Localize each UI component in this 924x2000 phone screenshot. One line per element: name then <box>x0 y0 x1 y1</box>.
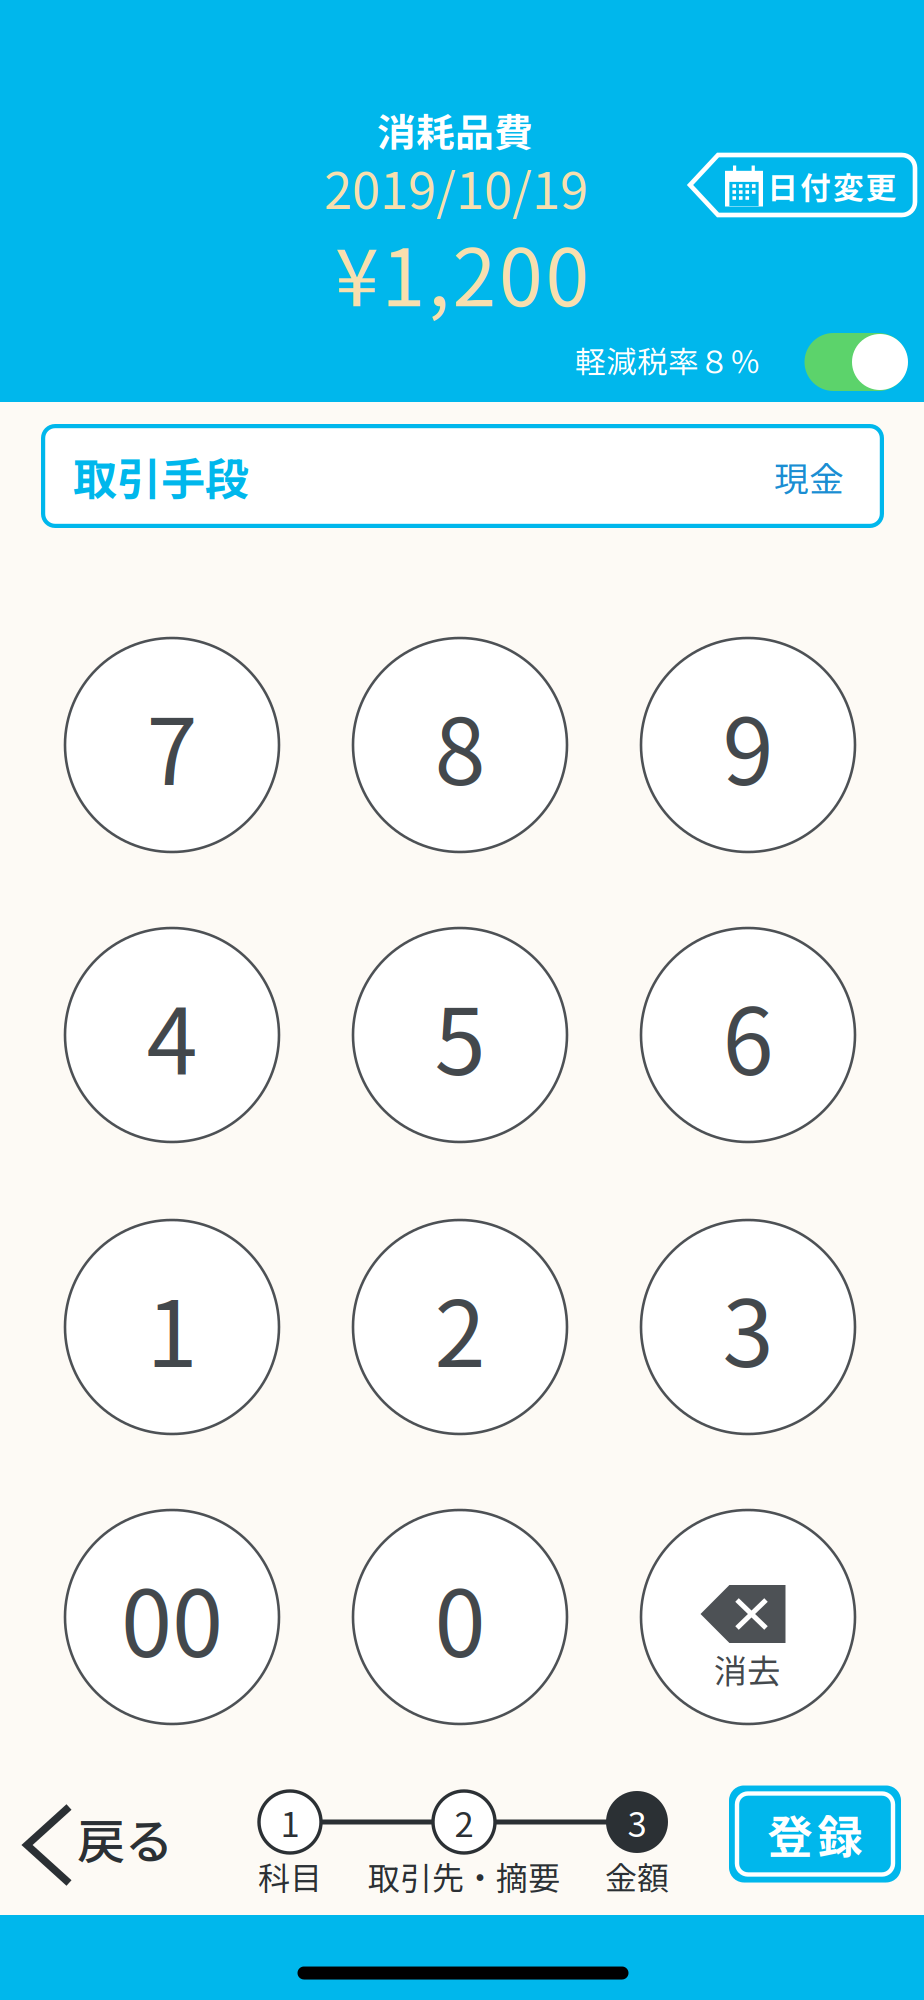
button[interactable]: 2 <box>353 1220 567 1434</box>
staticText: 4 <box>146 968 197 1102</box>
button[interactable]: 8 <box>353 638 567 852</box>
staticText: 現金 <box>774 452 844 502</box>
button[interactable]: 00 <box>65 1510 279 1724</box>
staticText: 00 <box>121 1550 223 1684</box>
staticText: 3 <box>722 1260 773 1394</box>
button[interactable]: 1 <box>65 1220 279 1434</box>
staticText: 7 <box>146 678 197 812</box>
staticText: 取引先・摘要 <box>368 1853 560 1899</box>
staticText: 0 <box>434 1550 485 1684</box>
staticText: 消耗品費 <box>377 102 533 158</box>
staticText: 登録 <box>767 1801 862 1867</box>
staticText: 8 <box>434 678 485 812</box>
staticText: 金額 <box>605 1853 669 1899</box>
staticText: 日付変更 <box>768 164 896 208</box>
staticText: 3 <box>627 1797 646 1847</box>
button[interactable]: 軽減税率 8% <box>804 333 907 391</box>
button[interactable]: 消去 <box>641 1510 855 1724</box>
staticText: 消去 <box>714 1645 780 1693</box>
button[interactable]: 9 <box>641 638 855 852</box>
button[interactable]: 3 <box>641 1220 855 1434</box>
staticText: 6 <box>722 968 773 1102</box>
staticText: 戻る <box>77 1803 173 1873</box>
button[interactable]: 戻る <box>4 1785 194 1905</box>
staticText: 1 <box>280 1797 299 1847</box>
button[interactable]: 5 <box>353 928 567 1142</box>
staticText: 2019/10/19 <box>324 150 588 224</box>
staticText: 5 <box>434 968 485 1102</box>
button[interactable]: 登録 <box>729 1785 901 1882</box>
staticText: 9 <box>722 678 773 812</box>
button[interactable]: 7 <box>65 638 279 852</box>
button[interactable]: 4 <box>65 928 279 1142</box>
button[interactable]: 0 <box>353 1510 567 1724</box>
button[interactable]: 取引手段 <box>41 424 884 528</box>
staticText: 2 <box>434 1260 485 1394</box>
staticText: ¥1,200 <box>335 215 589 329</box>
staticText: 科目 <box>258 1853 322 1899</box>
button[interactable]: 6 <box>641 928 855 1142</box>
staticText: 2 <box>454 1797 473 1847</box>
button[interactable]: 日付変更 <box>690 155 915 215</box>
staticText: 1 <box>146 1260 197 1394</box>
staticText: 軽減税率８％ <box>575 338 761 382</box>
staticText: 取引手段 <box>73 444 249 508</box>
